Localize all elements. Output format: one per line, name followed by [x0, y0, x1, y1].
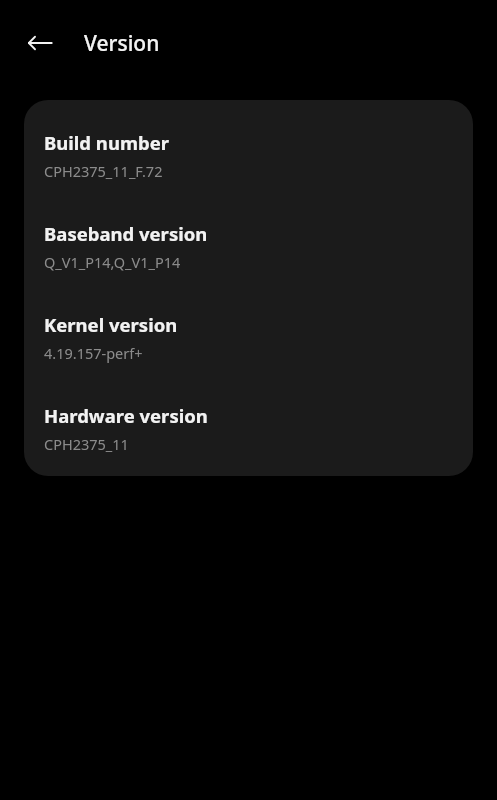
- staticText: 4.19.157-perf+: [44, 343, 143, 363]
- staticText: Version: [84, 29, 160, 58]
- staticText: CPH2375_11_F.72: [44, 161, 163, 181]
- staticText: Build number: [44, 130, 169, 155]
- button[interactable]: Kernel version: [24, 310, 473, 365]
- staticText: Q_V1_P14,Q_V1_P14: [44, 252, 181, 272]
- staticText: Kernel version: [44, 312, 178, 337]
- staticText: CPH2375_11: [44, 434, 129, 454]
- button[interactable]: Baseband version: [24, 219, 473, 274]
- staticText: Hardware version: [44, 403, 208, 428]
- button[interactable]: Back: [18, 21, 62, 65]
- button[interactable]: Hardware version: [24, 401, 473, 456]
- staticText: Baseband version: [44, 221, 208, 246]
- button[interactable]: Build number: [24, 128, 473, 183]
